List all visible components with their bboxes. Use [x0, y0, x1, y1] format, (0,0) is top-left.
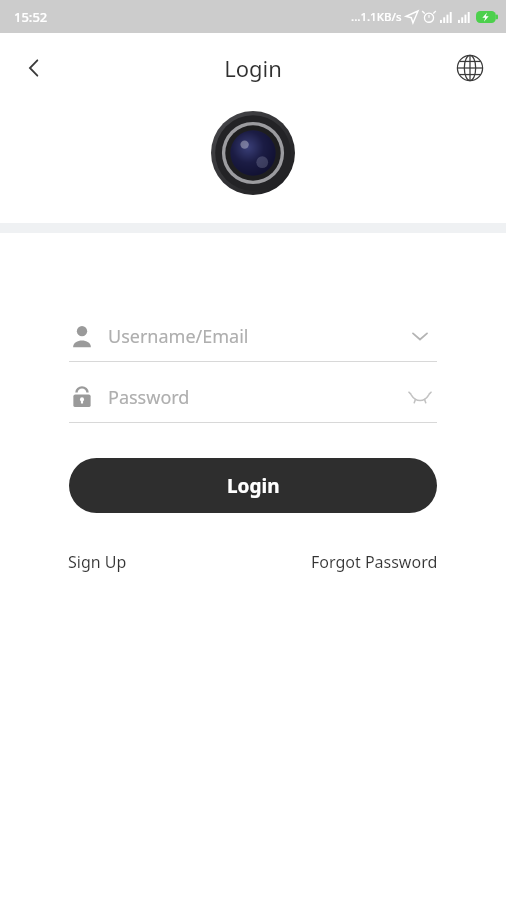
button[interactable]: Password — [69, 372, 437, 422]
button[interactable]: Show password — [403, 380, 437, 414]
button[interactable]: Language — [448, 46, 492, 90]
staticText: Username/Email — [108, 324, 403, 349]
button[interactable]: Login — [69, 458, 437, 513]
staticText: Login — [224, 53, 282, 83]
staticText: 15:52 — [14, 8, 48, 26]
button[interactable]: Back — [10, 44, 58, 92]
button[interactable]: Show saved accounts — [403, 319, 437, 353]
staticText: Sign Up — [68, 551, 127, 573]
staticText: Password — [108, 385, 403, 410]
button[interactable]: Sign Up — [60, 545, 135, 579]
staticText: Login — [227, 473, 280, 499]
button[interactable]: Forgot Password — [303, 545, 446, 579]
staticText: ...1.1KB/s — [351, 9, 402, 25]
staticText: Forgot Password — [311, 551, 438, 573]
button[interactable]: Username/Email — [69, 311, 437, 361]
